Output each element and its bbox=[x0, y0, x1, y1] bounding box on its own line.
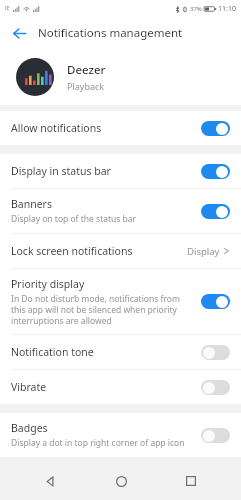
staticText: IE bbox=[5, 5, 10, 12]
button[interactable]: Off bbox=[201, 380, 230, 395]
staticText: In Do not disturb mode, notifications fr… bbox=[11, 293, 193, 326]
staticText: Display in status bar bbox=[11, 164, 111, 178]
staticText: Notification tone bbox=[11, 345, 94, 359]
staticText: Vibrate bbox=[11, 380, 47, 394]
button[interactable]: On bbox=[201, 204, 230, 219]
button[interactable]: Vibrate bbox=[0, 370, 241, 404]
button[interactable]: On bbox=[201, 294, 230, 309]
button[interactable]: Off bbox=[201, 428, 230, 443]
button[interactable]: Allow notifications bbox=[0, 111, 241, 145]
button[interactable]: Display in status bar bbox=[0, 154, 241, 188]
button[interactable]: Recents bbox=[171, 462, 211, 500]
staticText: Banners bbox=[11, 197, 52, 211]
staticText: Deezer bbox=[67, 62, 106, 78]
staticText: Playback bbox=[67, 80, 105, 92]
staticText: Display a dot in top right corner of app… bbox=[11, 437, 185, 449]
staticText: Allow notifications bbox=[11, 121, 102, 135]
button[interactable]: Notification tone bbox=[0, 335, 241, 369]
button[interactable]: On bbox=[201, 121, 230, 136]
staticText: Badges bbox=[11, 421, 48, 435]
button[interactable]: Priority display bbox=[0, 269, 241, 334]
button[interactable]: On bbox=[201, 164, 230, 179]
button[interactable]: Back bbox=[30, 462, 70, 500]
staticText: Notifications management bbox=[38, 25, 183, 41]
button[interactable]: Back bbox=[6, 20, 32, 46]
staticText: Lock screen notifications bbox=[11, 244, 187, 258]
staticText: 37% bbox=[190, 5, 202, 13]
staticText: Priority display bbox=[11, 277, 85, 291]
staticText: 11:10 bbox=[218, 4, 236, 14]
button[interactable]: Deezer bbox=[0, 48, 241, 105]
button[interactable]: Off bbox=[201, 345, 230, 360]
button[interactable]: Home bbox=[101, 462, 141, 500]
button[interactable]: Badges bbox=[0, 413, 241, 457]
staticText: Display bbox=[187, 245, 220, 258]
button[interactable]: Lock screen notifications bbox=[0, 234, 241, 268]
staticText: Display on top of the status bar bbox=[11, 213, 137, 225]
button[interactable]: Banners bbox=[0, 189, 241, 233]
